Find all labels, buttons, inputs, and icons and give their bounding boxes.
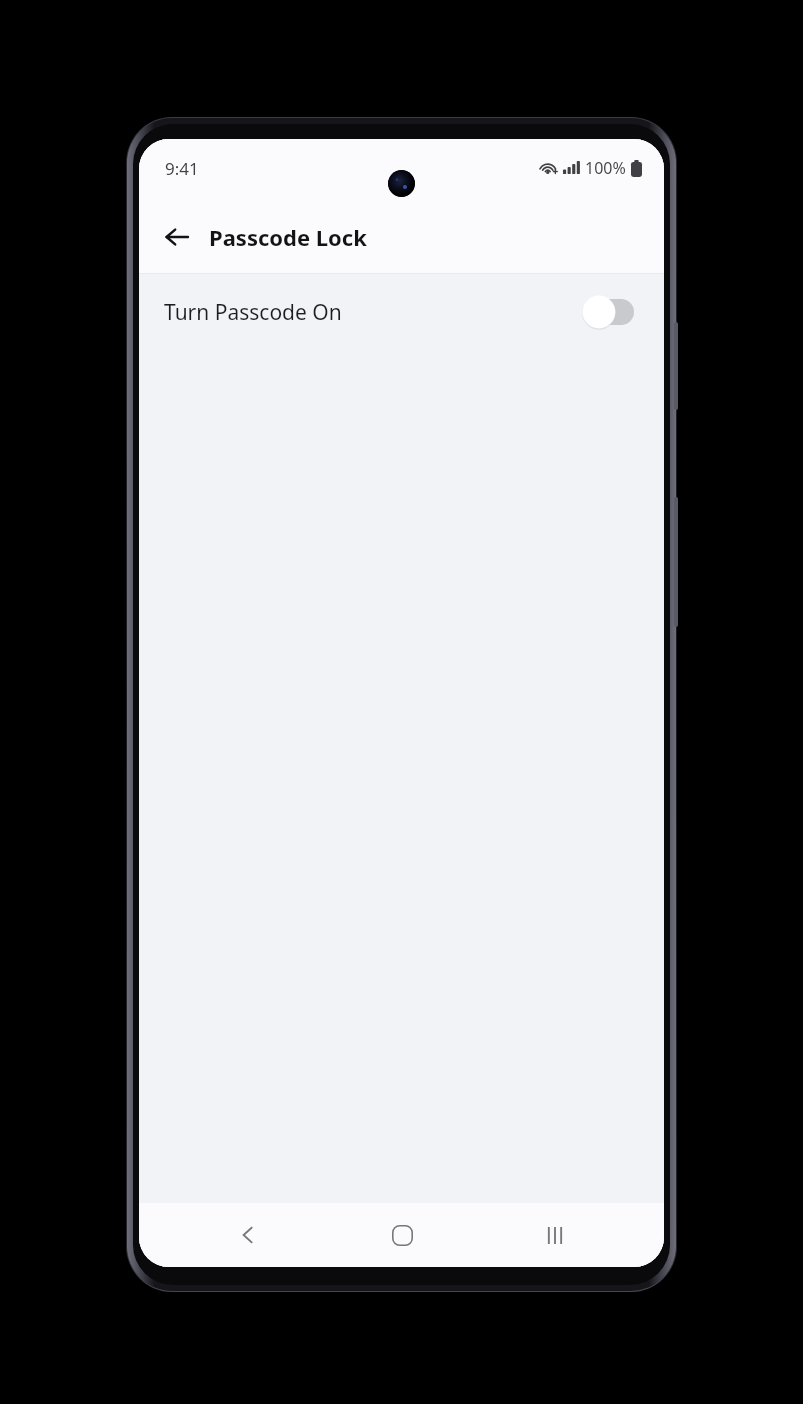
button[interactable]: Back xyxy=(203,1203,293,1267)
button[interactable]: Home xyxy=(357,1203,447,1267)
button[interactable]: Back xyxy=(153,213,201,261)
button[interactable]: Turn Passcode On xyxy=(139,274,664,350)
staticText: Passcode Lock xyxy=(209,222,367,252)
staticText: 100% xyxy=(585,157,626,179)
button[interactable]: Turn Passcode On toggle, off xyxy=(582,295,634,329)
staticText: 9:41 xyxy=(165,157,199,180)
button[interactable]: Recent apps xyxy=(510,1203,600,1267)
staticText: Turn Passcode On xyxy=(164,298,342,327)
